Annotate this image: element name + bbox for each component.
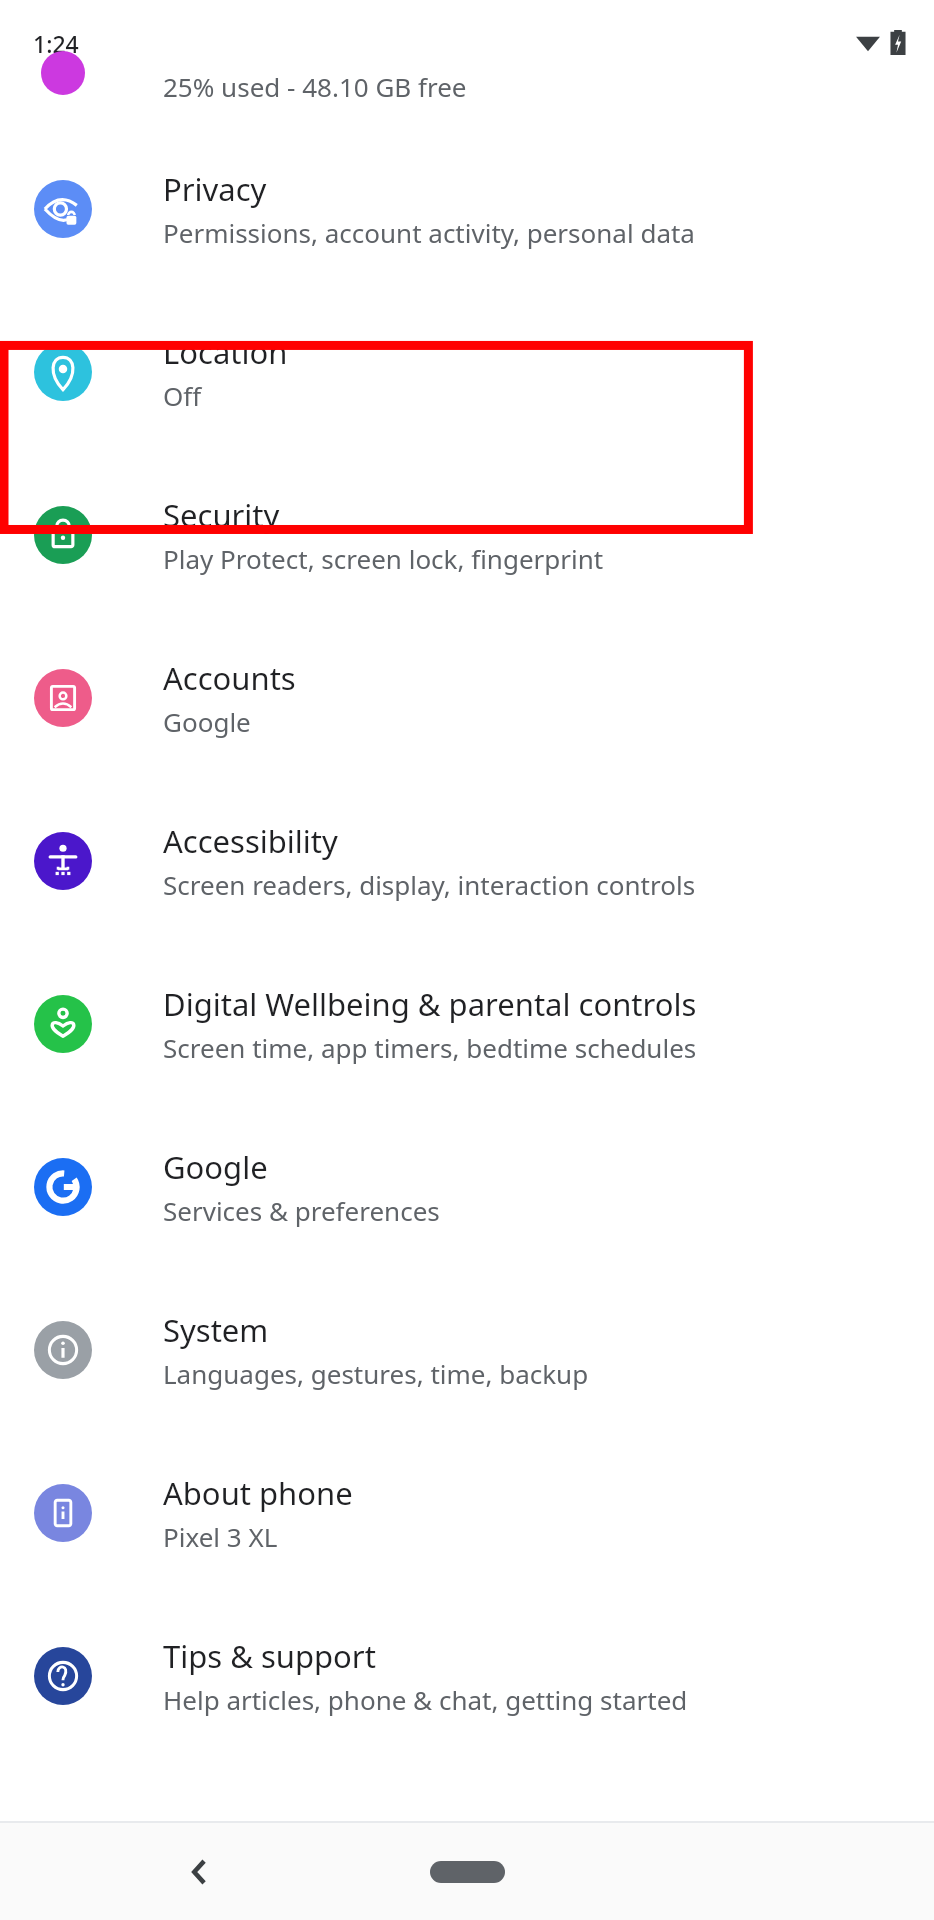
staticText: Pixel 3 XL	[163, 1519, 278, 1554]
staticText: Play Protect, screen lock, fingerprint	[163, 541, 604, 576]
staticText: Accessibility	[163, 820, 338, 862]
button[interactable]: Accounts	[0, 616, 934, 779]
button[interactable]: Accessibility	[0, 779, 934, 942]
button[interactable]: Google	[0, 1105, 934, 1268]
staticText: Screen readers, display, interaction con…	[163, 867, 696, 902]
button[interactable]: Home	[407, 1842, 527, 1902]
staticText: Google	[163, 704, 251, 739]
button[interactable]: Location	[0, 290, 934, 453]
staticText: Digital Wellbeing & parental controls	[163, 983, 697, 1025]
staticText: Permissions, account activity, personal …	[163, 215, 695, 250]
staticText: 1:24	[33, 28, 79, 59]
staticText: Screen time, app timers, bedtime schedul…	[163, 1030, 697, 1065]
staticText: Privacy	[163, 168, 267, 210]
staticText: Accounts	[163, 657, 296, 699]
button[interactable]: System	[0, 1268, 934, 1431]
button[interactable]: Digital Wellbeing & parental controls	[0, 942, 934, 1105]
staticText: Off	[163, 378, 202, 413]
staticText: Languages, gestures, time, backup	[163, 1356, 589, 1391]
button[interactable]: Back	[160, 1832, 240, 1912]
staticText: About phone	[163, 1472, 353, 1514]
button[interactable]: Security	[0, 453, 934, 616]
staticText: Location	[163, 331, 288, 373]
staticText: Help articles, phone & chat, getting sta…	[163, 1682, 688, 1717]
button[interactable]: Privacy	[0, 127, 934, 290]
staticText: 25% used - 48.10 GB free	[163, 69, 467, 104]
staticText: Services & preferences	[163, 1193, 440, 1228]
staticText: Security	[163, 494, 280, 536]
staticText: Tips & support	[163, 1635, 376, 1677]
staticText: System	[163, 1309, 269, 1351]
button[interactable]: About phone	[0, 1431, 934, 1594]
staticText: Google	[163, 1146, 268, 1188]
button[interactable]: Tips & support	[0, 1594, 934, 1757]
